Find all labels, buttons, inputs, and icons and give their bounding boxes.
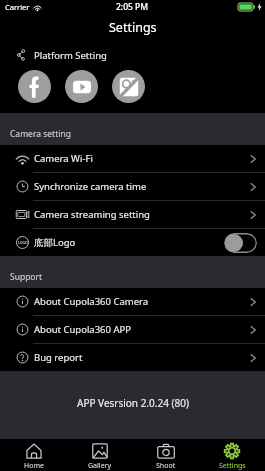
staticText: Shoot [156,461,176,471]
staticText: Camera streaming setting [34,208,150,221]
button[interactable]: YouTube [65,70,98,103]
button[interactable]: Synchronize camera time [0,173,265,200]
staticText: LOGO [18,240,28,245]
button[interactable]: Instagram [112,70,145,103]
staticText: About Cupola360 APP [34,323,132,336]
staticText: Settings [219,461,246,471]
button[interactable]: Facebook [18,70,51,103]
staticText: Home [24,461,44,471]
staticText: Synchronize camera time [34,180,147,193]
staticText: Support [10,271,43,283]
button[interactable]: Bug report [0,344,265,371]
button[interactable]: LOGO [0,229,265,256]
staticText: Platform Setting [34,49,107,62]
staticText: APP Vesrsion 2.0.24 (80) [77,396,189,410]
button[interactable]: About Cupola360 Camera [0,288,265,315]
staticText: About Cupola360 Camera [34,295,149,308]
staticText: Bug report [34,351,83,364]
button[interactable]: Settings [199,439,265,471]
staticText: 2:05 PM [116,1,149,13]
button[interactable]: Shoot [133,439,199,471]
staticText: Carrier [5,2,30,12]
button[interactable]: Camera streaming setting [0,201,265,228]
button[interactable]: Gallery [67,439,133,471]
staticText: Camera Wi-Fi [34,152,93,165]
button[interactable]: Platform Setting [0,38,265,70]
staticText: Camera setting [10,128,71,140]
button[interactable]: Camera Wi-Fi [0,145,265,172]
button[interactable]: About Cupola360 APP [0,316,265,343]
button[interactable]: Home [0,439,67,471]
button[interactable]: Toggle bottom logo [224,233,257,253]
staticText: Settings [109,19,157,36]
staticText: 底部Logo [34,236,76,249]
staticText: Gallery [88,461,112,471]
